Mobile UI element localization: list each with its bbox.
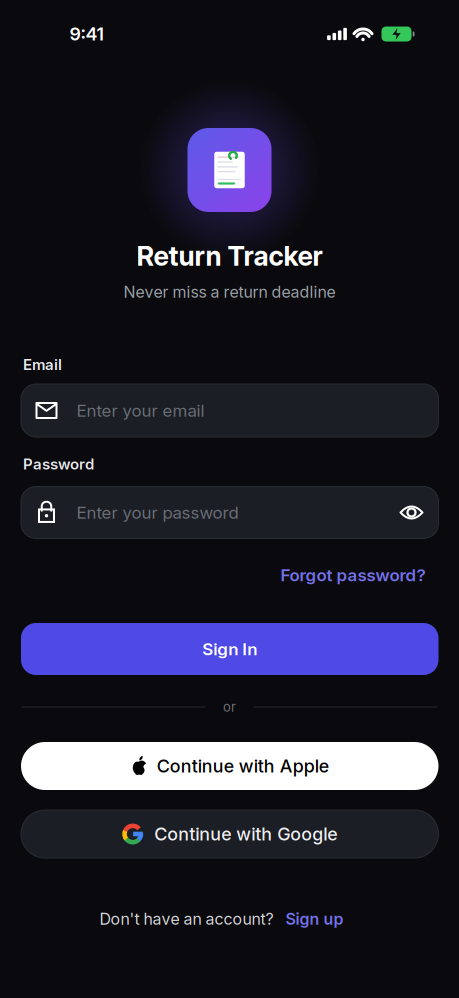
staticText: Password	[23, 455, 94, 473]
button[interactable]: Continue with Apple	[21, 742, 438, 790]
staticText: Forgot password?	[280, 565, 425, 585]
staticText: Enter your password	[76, 502, 238, 523]
staticText: Return Tracker	[136, 240, 322, 272]
staticText: 9:41	[69, 23, 103, 45]
staticText: Never miss a return deadline	[123, 283, 335, 301]
button[interactable]: Sign In	[21, 623, 438, 675]
staticText: Sign up	[285, 910, 343, 928]
button[interactable]: Continue with Google	[21, 810, 438, 858]
staticText: Continue with Google	[154, 823, 337, 845]
button[interactable]: Sign up	[285, 910, 343, 928]
button[interactable]: Enter your email	[21, 384, 438, 437]
button[interactable]: Show password	[393, 494, 429, 530]
staticText: or	[223, 699, 236, 715]
button[interactable]: Forgot password?	[280, 565, 425, 585]
button[interactable]: Enter your password	[21, 486, 438, 538]
staticText: Enter your email	[76, 400, 204, 421]
staticText: Continue with Apple	[157, 755, 329, 777]
staticText: Sign In	[202, 639, 257, 659]
staticText: Don't have an account?	[99, 910, 273, 928]
staticText: Email	[23, 356, 62, 373]
